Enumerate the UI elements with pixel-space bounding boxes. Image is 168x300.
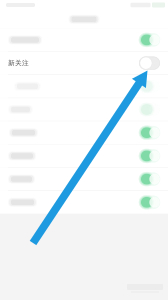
button[interactable] (0, 29, 168, 51)
button[interactable] (0, 191, 168, 214)
button[interactable] (0, 75, 168, 98)
button[interactable] (0, 121, 168, 144)
staticText: 新关注 (8, 59, 29, 67)
button[interactable] (0, 168, 168, 190)
button[interactable] (0, 145, 168, 167)
button[interactable]: 新关注 (0, 52, 168, 74)
button[interactable] (0, 98, 168, 121)
